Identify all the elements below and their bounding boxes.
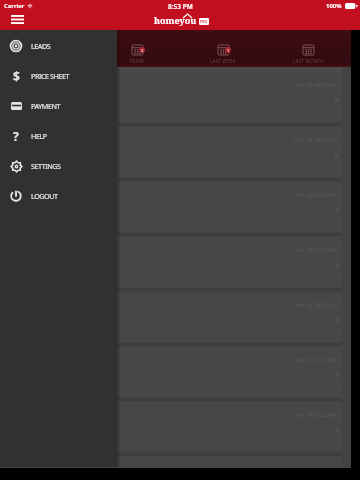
staticText: LAST WEEK	[210, 58, 236, 64]
button[interactable]: 2	[97, 30, 177, 67]
button[interactable]: SETTINGS	[0, 151, 117, 181]
staticText: Carrier	[4, 2, 25, 10]
staticText: PRICE SHEET	[31, 71, 69, 81]
button[interactable]: ?	[0, 121, 117, 151]
staticText: PRO	[200, 19, 208, 24]
staticText: LOGOUT	[31, 191, 58, 201]
staticText: homeyou	[154, 14, 197, 26]
staticText: SETTINGS	[31, 161, 61, 171]
button[interactable]: $	[0, 61, 117, 91]
button[interactable]: Feb 23 09:15AM	[0, 127, 342, 182]
button[interactable]: Feb 23 04:42PM	[0, 72, 342, 127]
button[interactable]: PAYMENT	[0, 91, 117, 121]
staticText: ?	[13, 128, 19, 144]
button[interactable]: LAST MONTH	[268, 30, 348, 67]
staticText: 1	[227, 48, 230, 53]
button[interactable]: Feb 20 11:15AM	[0, 237, 342, 292]
staticText: PAYMENT	[31, 101, 61, 111]
staticText: Feb 23 09:15AM	[295, 136, 337, 144]
staticText: Feb 23 04:42PM	[295, 81, 337, 89]
button[interactable]: Feb 20 08:55AM	[0, 292, 342, 347]
button[interactable]: Open navigation menu	[6, 11, 28, 28]
staticText: Feb 18 05:22PM	[295, 411, 337, 419]
button[interactable]: Feb 19 03:32PM	[0, 347, 342, 402]
staticText: HELP	[31, 131, 47, 141]
staticText: LAST MONTH	[293, 58, 324, 64]
staticText: Feb 20 11:15AM	[295, 246, 337, 254]
button[interactable]: LOGOUT	[0, 181, 117, 211]
staticText: LEADS	[31, 41, 51, 51]
button[interactable]: Feb 18 05:22PM	[0, 402, 342, 457]
staticText: 100%	[326, 2, 342, 10]
staticText: 2	[141, 48, 144, 53]
staticText: 8:53 PM	[168, 2, 193, 11]
button[interactable]: Feb 22 02:31PM	[0, 182, 342, 237]
button[interactable]: LEADS	[0, 31, 117, 61]
staticText: Feb 22 02:31PM	[295, 191, 337, 199]
staticText: $	[13, 68, 20, 84]
staticText: Feb 19 03:32PM	[295, 356, 337, 364]
button[interactable]: 1	[183, 30, 263, 67]
staticText: TODAY	[129, 58, 145, 64]
staticText: Feb 20 08:55AM	[295, 301, 337, 309]
